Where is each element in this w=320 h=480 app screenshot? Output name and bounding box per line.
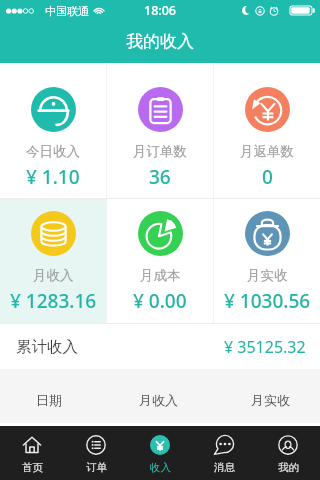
button[interactable]: 月成本 (107, 199, 213, 323)
staticText: 月收入 (139, 392, 178, 408)
button[interactable]: 月实收 (214, 199, 320, 323)
button[interactable]: 日期 (0, 383, 97, 417)
staticText: 月成本 (140, 267, 181, 284)
staticText: 收入 (150, 461, 171, 474)
staticText: 月返单数 (240, 143, 294, 160)
staticText: 月收入 (33, 267, 74, 284)
staticText: ¥ 1283.16 (10, 288, 97, 314)
staticText: 我的 (278, 461, 299, 474)
button[interactable]: 消息 (192, 426, 256, 480)
button[interactable]: 我的 (256, 426, 320, 480)
staticText: 日期 (36, 392, 62, 408)
staticText: 消息 (214, 461, 235, 474)
staticText: 月订单数 (133, 143, 187, 160)
button[interactable]: 首页 (0, 426, 64, 480)
button[interactable]: 月订单数 (107, 63, 213, 198)
staticText: ¥ 0.00 (133, 288, 187, 314)
button[interactable]: 收入 (128, 426, 192, 480)
staticText: ¥ 1030.56 (224, 288, 311, 314)
staticText: 月实收 (247, 267, 288, 284)
staticText: 月实收 (251, 392, 290, 408)
staticText: 订单 (86, 461, 107, 474)
staticText: 我的收入 (126, 31, 194, 52)
button[interactable]: 订单 (64, 426, 128, 480)
staticText: 今日收入 (26, 143, 80, 160)
staticText: 累计收入 (16, 337, 78, 357)
button[interactable]: 月收入 (0, 199, 106, 323)
button[interactable]: 月返单数 (214, 63, 320, 198)
staticText: 36 (149, 164, 171, 190)
staticText: 0 (262, 164, 273, 190)
button[interactable]: 累计收入 (0, 324, 320, 369)
button[interactable]: 月收入 (97, 383, 220, 417)
button[interactable]: 今日收入 (0, 63, 106, 198)
staticText: 中国联通 (45, 4, 89, 18)
staticText: ¥ 1.10 (26, 164, 80, 190)
button[interactable]: 月实收 (220, 383, 320, 417)
staticText: 首页 (22, 461, 43, 474)
staticText: ¥ 35125.32 (224, 336, 306, 358)
staticText: 18:06 (144, 2, 177, 19)
